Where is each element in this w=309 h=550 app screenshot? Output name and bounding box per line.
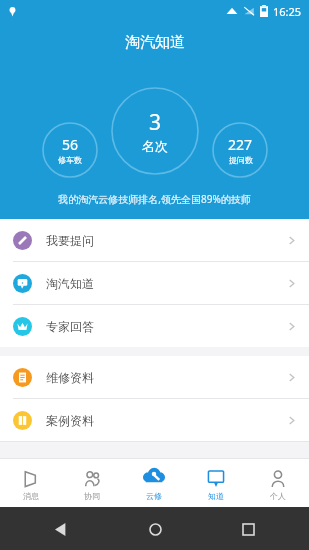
button[interactable]: Recents [235, 516, 261, 542]
staticText: 云修 [146, 491, 162, 501]
staticText: 16:25 [273, 4, 302, 19]
staticText: 个人 [270, 491, 286, 501]
button[interactable]: 消息 [0, 458, 61, 507]
button[interactable]: 协同 [61, 458, 123, 507]
staticText: 提问数 [229, 155, 253, 165]
staticText: 56 [62, 135, 79, 154]
staticText: 我的淘汽云修技师排名,领先全国89%的技师 [58, 192, 251, 206]
button[interactable]: Home [142, 516, 168, 542]
staticText: 227 [228, 135, 253, 154]
button[interactable]: 专家回答 [0, 305, 309, 347]
staticText: 消息 [23, 491, 39, 501]
button[interactable]: 我要提问 [0, 219, 309, 261]
staticText: 专家回答 [46, 319, 94, 334]
staticText: 淘汽知道 [125, 33, 185, 52]
button[interactable]: 维修资料 [0, 356, 309, 398]
staticText: 案例资料 [46, 413, 94, 428]
staticText: 知道 [208, 491, 224, 501]
staticText: 修车数 [58, 155, 82, 165]
staticText: 我要提问 [46, 233, 94, 248]
button[interactable]: Back [48, 516, 74, 542]
button[interactable]: 个人 [247, 458, 309, 507]
button[interactable]: 淘汽知道 [0, 262, 309, 304]
button[interactable]: 知道 [185, 458, 247, 507]
staticText: 名次 [142, 138, 168, 154]
button[interactable]: 云修 [123, 458, 185, 507]
staticText: 维修资料 [46, 370, 94, 385]
staticText: 淘汽知道 [46, 276, 94, 291]
staticText: 3 [149, 108, 162, 137]
staticText: 协同 [84, 491, 100, 501]
button[interactable]: 案例资料 [0, 399, 309, 441]
